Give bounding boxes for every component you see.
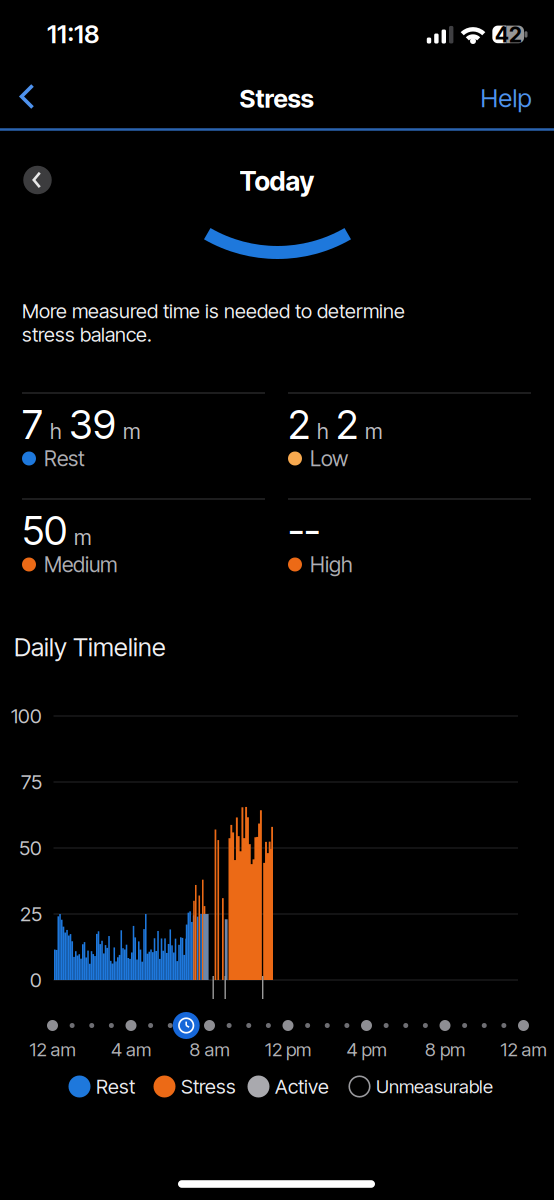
- staticText: 8 am: [189, 1038, 229, 1060]
- staticText: 2: [288, 401, 310, 448]
- staticText: Today: [239, 165, 314, 197]
- button[interactable]: Help: [480, 83, 531, 113]
- staticText: 2: [336, 401, 358, 448]
- staticText: m: [123, 419, 141, 444]
- staticText: h: [317, 419, 329, 444]
- staticText: 25: [20, 902, 42, 926]
- staticText: m: [365, 419, 383, 444]
- staticText: 8 pm: [425, 1038, 465, 1060]
- staticText: 0: [30, 968, 42, 992]
- staticText: Rest: [44, 446, 85, 471]
- staticText: --: [288, 507, 320, 554]
- staticText: 75: [21, 770, 42, 794]
- staticText: 4 pm: [346, 1038, 386, 1060]
- staticText: More measured time is needed to determin…: [22, 299, 405, 323]
- staticText: Unmeasurable: [376, 1075, 493, 1097]
- staticText: 50: [22, 507, 67, 554]
- staticText: Daily Timeline: [14, 632, 166, 662]
- staticText: m: [74, 525, 92, 550]
- staticText: 7: [22, 401, 43, 448]
- staticText: Active: [275, 1075, 329, 1098]
- staticText: Low: [310, 446, 348, 471]
- staticText: stress balance.: [22, 323, 152, 346]
- button[interactable]: Selected time: [173, 1012, 200, 1039]
- button[interactable]: Back: [23, 166, 52, 194]
- staticText: High: [310, 552, 353, 577]
- button[interactable]: Back: [19, 83, 35, 109]
- staticText: 4 am: [111, 1038, 151, 1060]
- staticText: Stress: [239, 84, 313, 113]
- staticText: h: [50, 419, 62, 444]
- staticText: 42: [495, 22, 522, 47]
- staticText: Help: [480, 83, 531, 113]
- staticText: 12 am: [29, 1038, 75, 1060]
- staticText: 50: [19, 836, 42, 860]
- staticText: 100: [11, 704, 42, 728]
- staticText: Stress: [181, 1075, 236, 1098]
- staticText: 39: [69, 401, 116, 448]
- staticText: Medium: [44, 552, 118, 577]
- staticText: 11:18: [47, 19, 99, 49]
- staticText: 12 am: [500, 1038, 546, 1060]
- staticText: Rest: [96, 1075, 135, 1098]
- staticText: 12 pm: [265, 1038, 311, 1060]
